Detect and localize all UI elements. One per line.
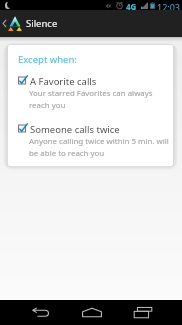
staticText: Silence (26, 17, 58, 30)
staticText: Your starred Favorites can always reach … (29, 88, 153, 110)
staticText: Except when: (18, 53, 77, 66)
button[interactable]: Home (76, 300, 107, 325)
button[interactable]: Navigate up (0, 10, 50, 37)
staticText: A Favorite calls (30, 75, 97, 88)
staticText: Anyone calling twice within 5 min. will … (29, 136, 169, 158)
staticText: 4G (126, 1, 137, 11)
button[interactable]: Recent apps (127, 300, 158, 325)
staticText: Someone calls twice (30, 123, 120, 136)
button[interactable]: Someone calls twice (8, 123, 173, 158)
staticText: 12:03 (157, 1, 181, 11)
button[interactable]: Back (25, 300, 56, 325)
button[interactable]: A Favorite calls (8, 75, 173, 110)
